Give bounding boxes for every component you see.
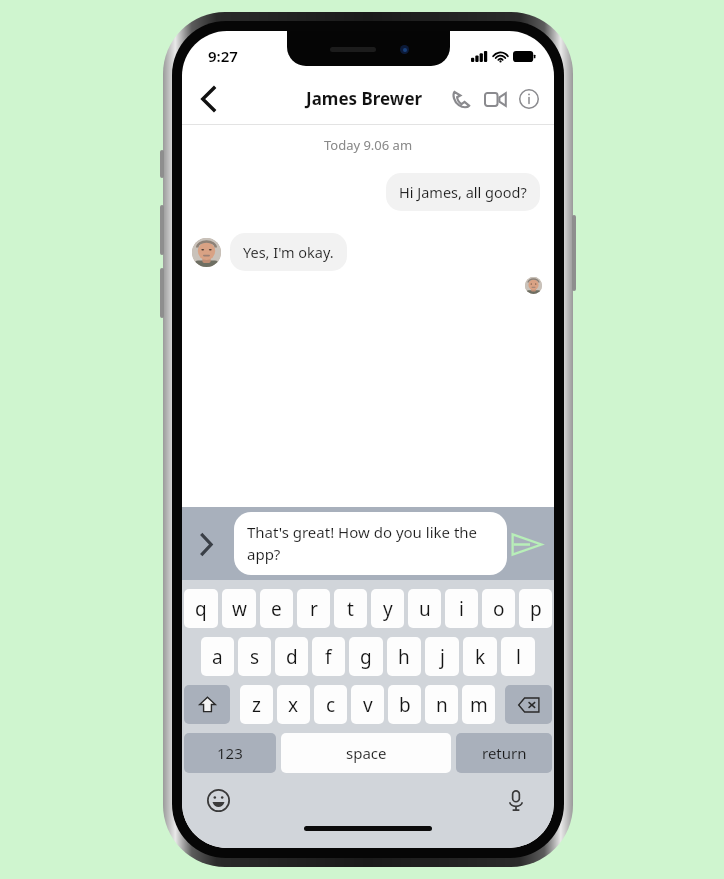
staticText: t — [347, 596, 354, 622]
button[interactable]: k — [463, 637, 497, 676]
button[interactable]: o — [482, 589, 515, 628]
button[interactable]: z — [240, 685, 273, 724]
staticText: o — [493, 596, 505, 622]
button[interactable]: l — [501, 637, 535, 676]
button[interactable]: Shift — [184, 685, 230, 724]
staticText: Hi James, all good? — [399, 182, 527, 202]
staticText: r — [310, 596, 318, 622]
button[interactable]: b — [388, 685, 421, 724]
button[interactable]: w — [222, 589, 256, 628]
button[interactable]: n — [425, 685, 458, 724]
button[interactable]: h — [387, 637, 421, 676]
button[interactable]: m — [462, 685, 495, 724]
button[interactable]: r — [297, 589, 330, 628]
staticText: 123 — [217, 743, 243, 763]
button[interactable]: Yes, I'm okay. — [230, 233, 347, 271]
button[interactable]: Back — [188, 79, 228, 119]
staticText: m — [470, 692, 488, 718]
button[interactable]: Video call — [478, 82, 512, 116]
button[interactable]: Hi James, all good? — [386, 173, 540, 211]
staticText: j — [440, 644, 445, 670]
staticText: e — [271, 596, 282, 622]
staticText: n — [436, 692, 448, 718]
button[interactable]: a — [201, 637, 234, 676]
button[interactable]: e — [260, 589, 293, 628]
button[interactable]: t — [334, 589, 367, 628]
staticText: f — [325, 644, 332, 670]
button[interactable]: q — [184, 589, 218, 628]
button[interactable]: 123 — [184, 733, 276, 773]
staticText: i — [459, 596, 464, 622]
button[interactable]: Backspace — [505, 685, 552, 724]
button[interactable]: p — [519, 589, 552, 628]
staticText: l — [516, 644, 521, 670]
button[interactable]: y — [371, 589, 404, 628]
button[interactable]: g — [349, 637, 383, 676]
button[interactable]: Send — [506, 523, 548, 565]
staticText: k — [475, 644, 486, 670]
button[interactable]: That's great! How do you like the app? — [234, 512, 507, 575]
staticText: z — [252, 692, 261, 718]
button[interactable]: Dictate — [500, 784, 532, 816]
button[interactable]: return — [456, 733, 552, 773]
button[interactable]: u — [408, 589, 441, 628]
staticText: c — [326, 692, 336, 718]
staticText: w — [232, 596, 247, 622]
button[interactable]: v — [351, 685, 384, 724]
button[interactable]: c — [314, 685, 347, 724]
button[interactable]: s — [238, 637, 271, 676]
staticText: a — [212, 644, 223, 670]
staticText: Today 9.06 am — [182, 136, 554, 154]
button[interactable]: j — [425, 637, 459, 676]
staticText: x — [288, 692, 299, 718]
button[interactable]: Call — [444, 82, 478, 116]
staticText: y — [383, 596, 393, 622]
staticText: v — [363, 692, 373, 718]
staticText: s — [250, 644, 260, 670]
button[interactable]: x — [277, 685, 310, 724]
staticText: James Brewer — [306, 87, 423, 110]
button[interactable]: Emoji — [202, 784, 234, 816]
staticText: 9:27 — [208, 46, 238, 66]
staticText: q — [195, 596, 207, 622]
staticText: h — [398, 644, 410, 670]
staticText: d — [286, 644, 298, 670]
staticText: space — [346, 743, 387, 763]
staticText: b — [399, 692, 411, 718]
staticText: u — [419, 596, 431, 622]
staticText: return — [482, 743, 527, 763]
staticText: p — [530, 596, 542, 622]
button[interactable]: d — [275, 637, 308, 676]
button[interactable]: f — [312, 637, 345, 676]
button[interactable]: space — [281, 733, 451, 773]
staticText: Yes, I'm okay. — [243, 242, 334, 262]
staticText: That's great! How do you like the app? — [247, 522, 494, 565]
button[interactable]: Expand options — [188, 526, 224, 562]
button[interactable]: i — [445, 589, 478, 628]
button[interactable]: Info — [512, 82, 546, 116]
staticText: g — [360, 644, 372, 670]
